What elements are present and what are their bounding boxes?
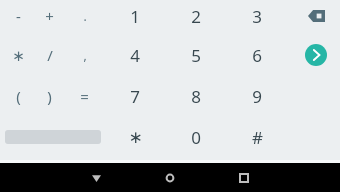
button[interactable]: 8 — [166, 76, 226, 116]
button[interactable]: Space — [2, 126, 104, 148]
staticText: # — [252, 126, 263, 149]
button[interactable]: = — [69, 77, 100, 115]
button[interactable]: 2 — [166, 0, 226, 36]
staticText: 4 — [130, 44, 140, 67]
staticText: 6 — [252, 44, 262, 67]
button[interactable]: ( — [3, 77, 34, 115]
button[interactable]: ∗ — [105, 117, 165, 157]
staticText: , — [83, 47, 87, 63]
staticText: . — [83, 8, 87, 24]
staticText: 2 — [191, 5, 201, 28]
staticText: 0 — [191, 126, 201, 149]
staticText: ∗ — [128, 127, 143, 147]
staticText: 7 — [130, 85, 140, 108]
button[interactable]: 7 — [105, 76, 165, 116]
staticText: ( — [16, 86, 21, 106]
button[interactable]: + — [34, 0, 65, 35]
button[interactable]: 1 — [105, 0, 165, 36]
staticText: 1 — [130, 5, 140, 28]
button[interactable]: 3 — [227, 0, 287, 36]
button[interactable]: Home — [150, 163, 190, 192]
button[interactable]: 5 — [166, 35, 226, 75]
staticText: + — [45, 6, 54, 26]
staticText: - — [16, 6, 21, 26]
button[interactable]: # — [227, 117, 287, 157]
staticText: = — [80, 86, 89, 106]
staticText: 5 — [191, 44, 201, 67]
staticText: 8 — [191, 85, 201, 108]
button[interactable]: . — [69, 0, 100, 35]
button[interactable]: Delete — [294, 0, 338, 35]
staticText: ) — [47, 86, 52, 106]
button[interactable]: 9 — [227, 76, 287, 116]
button[interactable]: 0 — [166, 117, 226, 157]
staticText: 9 — [252, 85, 262, 108]
button[interactable]: Recent apps — [224, 163, 264, 192]
button[interactable]: 6 — [227, 35, 287, 75]
button[interactable]: - — [3, 0, 34, 35]
staticText: 3 — [252, 5, 262, 28]
staticText: ∗ — [12, 47, 25, 64]
button[interactable]: ∗ — [3, 36, 34, 74]
staticText: / — [47, 45, 53, 65]
button[interactable]: / — [34, 36, 65, 74]
button[interactable]: , — [69, 36, 100, 74]
button[interactable]: 4 — [105, 35, 165, 75]
button[interactable]: Back — [76, 163, 116, 192]
button[interactable]: ) — [34, 77, 65, 115]
button[interactable]: Enter — [294, 36, 338, 74]
